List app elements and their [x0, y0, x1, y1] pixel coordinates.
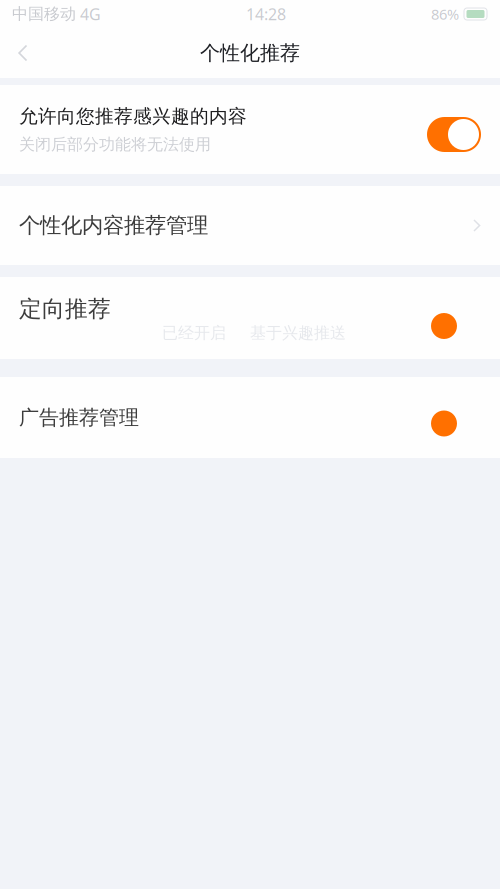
staticText: 基于兴趣推送: [250, 323, 346, 343]
button[interactable]: 个性化内容推荐管理: [0, 186, 500, 265]
staticText: 关闭后部分功能将无法使用: [19, 135, 211, 154]
staticText: 中国移动: [12, 4, 76, 24]
staticText: 个性化内容推荐管理: [19, 212, 208, 239]
staticText: 86%: [431, 4, 459, 24]
staticText: 个性化推荐: [200, 41, 300, 65]
staticText: 14:28: [246, 3, 286, 25]
button[interactable]: 广告推荐管理: [0, 377, 500, 458]
button[interactable]: 返回: [0, 31, 46, 75]
staticText: 已经开启: [162, 323, 226, 343]
button[interactable]: 允许向您推荐感兴趣的内容: [427, 117, 481, 152]
button[interactable]: 定向推荐: [0, 277, 500, 359]
staticText: 4G: [76, 3, 101, 25]
staticText: 广告推荐管理: [19, 405, 139, 430]
staticText: 定向推荐: [19, 295, 111, 323]
staticText: 允许向您推荐感兴趣的内容: [19, 105, 247, 128]
